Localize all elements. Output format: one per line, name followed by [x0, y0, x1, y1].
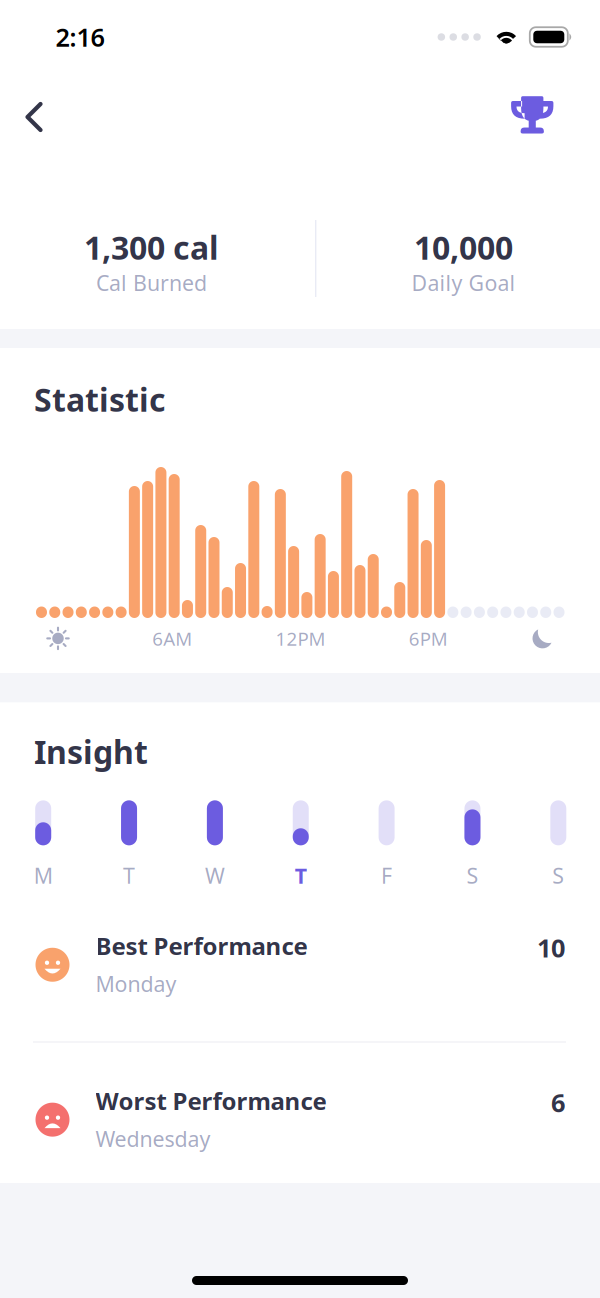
staticText: S: [466, 861, 478, 890]
button[interactable]: M: [35, 800, 51, 890]
staticText: 10,000: [414, 226, 513, 268]
staticText: W: [205, 861, 225, 890]
staticText: Wednesday: [95, 1124, 210, 1153]
staticText: 12PM: [275, 626, 325, 651]
staticText: Best Performance: [95, 930, 307, 962]
button[interactable]: W: [207, 800, 223, 890]
staticText: 6AM: [152, 626, 192, 651]
button[interactable]: S: [464, 800, 480, 890]
staticText: T: [123, 861, 135, 890]
staticText: T: [295, 861, 307, 890]
staticText: 10: [537, 931, 565, 964]
button[interactable]: S: [550, 800, 566, 890]
staticText: 2:16: [55, 20, 104, 54]
staticText: S: [552, 861, 564, 890]
button[interactable]: T: [293, 800, 309, 890]
staticText: 6: [551, 1086, 565, 1119]
staticText: F: [381, 861, 392, 890]
button[interactable]: Worst Performance: [0, 1043, 600, 1184]
staticText: 6PM: [409, 626, 448, 651]
staticText: Cal Burned: [96, 268, 207, 297]
button[interactable]: T: [121, 800, 137, 890]
staticText: Statistic: [34, 378, 166, 420]
staticText: M: [34, 861, 53, 890]
button[interactable]: F: [379, 800, 395, 890]
staticText: Monday: [95, 970, 176, 998]
staticText: Worst Performance: [95, 1085, 326, 1117]
staticText: Daily Goal: [411, 268, 515, 297]
button[interactable]: Best Performance: [0, 888, 600, 1041]
button[interactable]: Achievements: [489, 74, 600, 160]
staticText: Insight: [34, 730, 148, 773]
staticText: 1,300 cal: [84, 226, 219, 268]
button[interactable]: Back: [0, 84, 65, 150]
